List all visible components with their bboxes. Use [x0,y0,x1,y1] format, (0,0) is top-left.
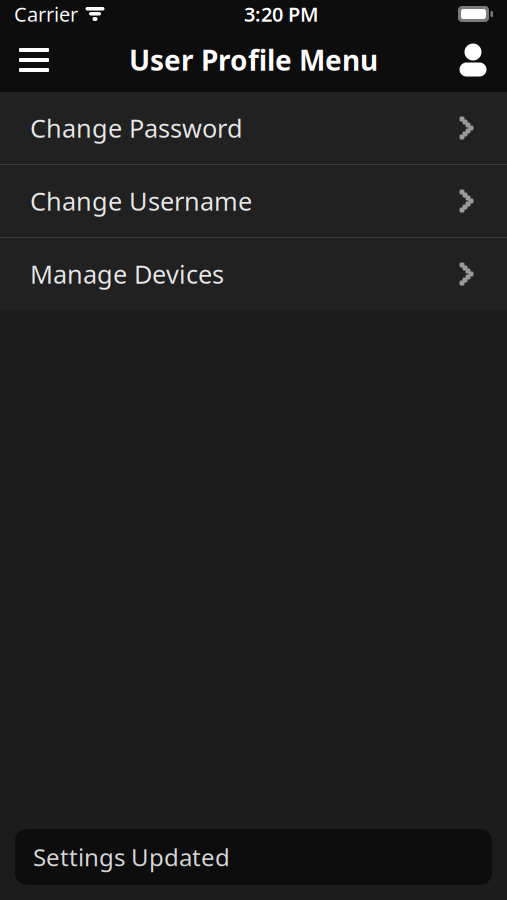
button[interactable]: Change Username [0,165,507,237]
staticText: Carrier [14,1,78,27]
staticText: Settings Updated [33,841,230,873]
button[interactable]: Change Password [0,92,507,164]
staticText: Change Password [30,111,243,145]
button[interactable]: Profile [444,28,502,92]
button[interactable]: Menu [5,28,63,92]
staticText: Change Username [30,184,252,218]
staticText: User Profile Menu [129,41,378,79]
staticText: 3:20 PM [244,1,319,27]
button[interactable]: Manage Devices [0,238,507,310]
staticText: Manage Devices [30,257,224,291]
